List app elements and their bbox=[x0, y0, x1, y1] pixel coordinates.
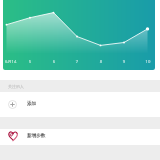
staticText: 5 bbox=[21, 59, 39, 65]
staticText: 9 bbox=[115, 59, 133, 65]
staticText: 关注的人 bbox=[8, 84, 24, 89]
staticText: 6月14 bbox=[5, 59, 17, 65]
other: Steps bbox=[8, 131, 18, 141]
button[interactable]: 添加 bbox=[0, 92, 160, 117]
staticText: 添加 bbox=[27, 101, 37, 107]
staticText: 新增步数 bbox=[27, 133, 46, 139]
staticText: 6 bbox=[45, 59, 63, 65]
staticText: 7 bbox=[68, 59, 86, 65]
staticText: 8 bbox=[92, 59, 110, 65]
button[interactable]: Steps bbox=[0, 129, 160, 145]
staticText: 10 bbox=[139, 59, 155, 65]
